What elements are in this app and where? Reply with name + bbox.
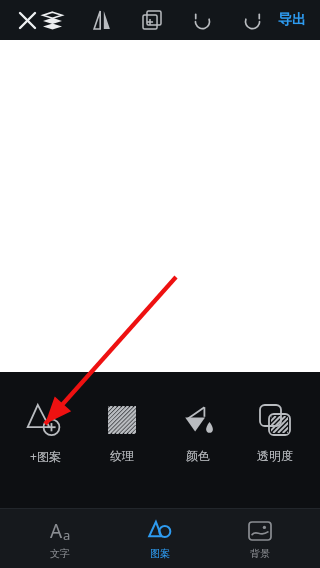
staticText: 纹理 (110, 448, 134, 463)
staticText: 导出 (278, 11, 306, 29)
button[interactable]: Close (10, 3, 44, 37)
button[interactable]: Redo (236, 4, 268, 36)
button[interactable]: Layers (36, 4, 68, 36)
staticText: 透明度 (257, 448, 293, 463)
staticText: 图案 (150, 547, 170, 560)
staticText: 文字 (50, 547, 70, 560)
button[interactable]: Duplicate (136, 4, 168, 36)
button[interactable]: Undo (186, 4, 218, 36)
button[interactable]: 透明度 (243, 398, 307, 465)
button[interactable]: 纹理 (90, 398, 154, 465)
button[interactable]: 图案 (120, 509, 200, 568)
button[interactable]: 背景 (220, 509, 300, 568)
staticText: 颜色 (186, 448, 210, 463)
staticText: A (50, 518, 63, 544)
button[interactable]: 导出 (274, 7, 310, 33)
staticText: 背景 (250, 547, 270, 560)
staticText: +图案 (30, 448, 61, 464)
button[interactable]: +图案 (13, 398, 77, 466)
staticText: a (63, 526, 71, 544)
button[interactable]: 颜色 (166, 398, 230, 465)
button[interactable]: A (20, 509, 100, 568)
button[interactable]: Mirror (86, 4, 118, 36)
